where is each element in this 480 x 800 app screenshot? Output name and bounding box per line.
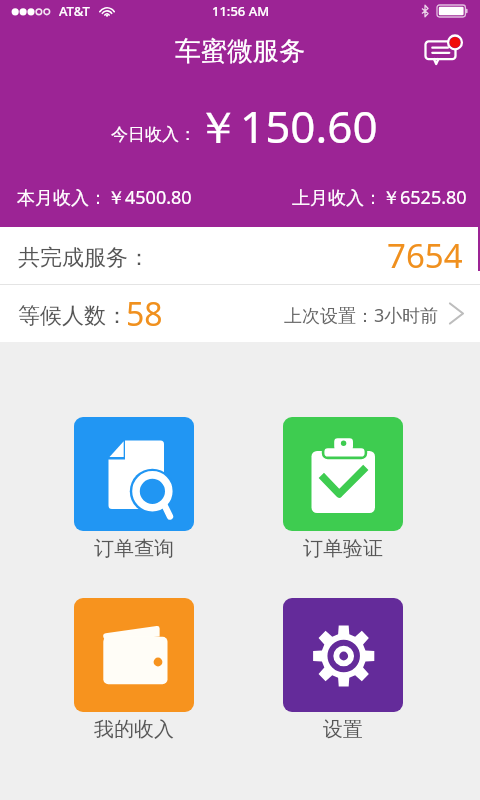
staticText: 11:56 AM: [212, 2, 270, 20]
staticText: 58: [126, 292, 163, 336]
staticText: 上次设置：3小时前: [284, 303, 439, 328]
staticText: 订单验证: [303, 536, 383, 561]
staticText: 订单查询: [94, 536, 174, 561]
button[interactable]: Messages: [418, 28, 464, 74]
button[interactable]: 设置: [283, 598, 403, 742]
staticText: 7654: [387, 233, 463, 278]
staticText: AT&T: [59, 2, 90, 20]
button[interactable]: 等候人数：: [0, 285, 480, 342]
staticText: 共完成服务：: [18, 244, 150, 272]
staticText: 今日收入：: [111, 124, 196, 145]
button[interactable]: 订单验证: [283, 417, 403, 561]
staticText: 我的收入: [94, 717, 174, 742]
staticText: 车蜜微服务: [175, 35, 305, 68]
button[interactable]: 订单查询: [74, 417, 194, 561]
staticText: 等候人数：: [18, 302, 128, 330]
staticText: 设置: [323, 717, 363, 742]
staticText: 本月收入：￥4500.80: [17, 185, 192, 210]
button[interactable]: 我的收入: [74, 598, 194, 742]
staticText: 上月收入：￥6525.80: [292, 185, 467, 210]
staticText: ￥150.60: [196, 96, 378, 156]
button[interactable]: 共完成服务：: [0, 227, 480, 284]
